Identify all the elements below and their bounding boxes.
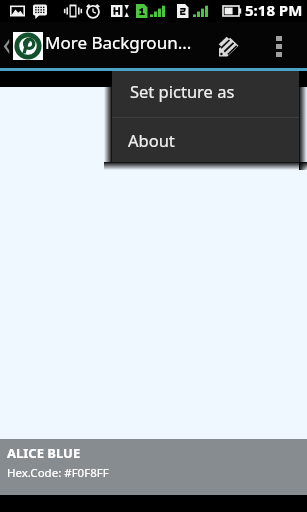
button[interactable]: Navigate up (0, 22, 13, 68)
button[interactable]: About (112, 118, 299, 162)
staticText: Hex.Code: #F0F8FF (7, 465, 109, 481)
staticText: More Backgroun... (45, 31, 211, 54)
button[interactable]: More options (259, 22, 307, 68)
button[interactable]: Set picture as (112, 71, 299, 117)
staticText: Set picture as (130, 80, 235, 102)
staticText: About (128, 129, 175, 151)
staticText: 5:18 PM (245, 0, 303, 20)
button[interactable]: Alice Blue background preview (0, 87, 307, 512)
staticText: ALICE BLUE (7, 444, 81, 462)
button[interactable]: Edit (209, 22, 259, 68)
